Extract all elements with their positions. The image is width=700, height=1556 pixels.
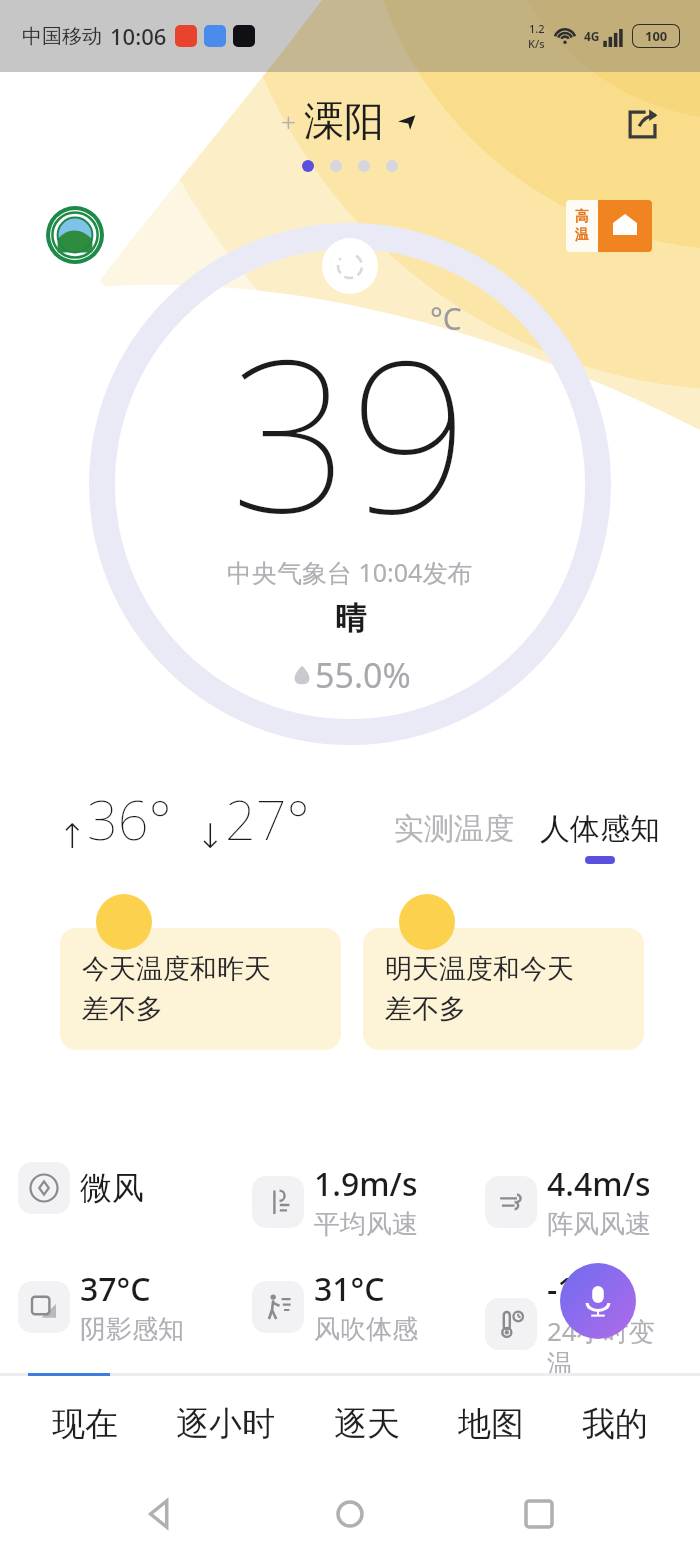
staticText: 实测温度	[394, 810, 514, 848]
button[interactable]: 现在	[46, 1393, 124, 1455]
staticText: 阴影感知	[80, 1313, 184, 1346]
staticText: 1.9m/s	[314, 1162, 418, 1206]
staticText: 今天温度和昨天 差不多	[82, 952, 271, 1026]
button[interactable]: 逐小时	[170, 1393, 281, 1455]
button[interactable]: 4.4m/s	[467, 1162, 700, 1241]
staticText: 明天温度和今天 差不多	[385, 952, 574, 1026]
staticText: 中央气象台 10:04发布	[227, 555, 473, 589]
button[interactable]: Back	[133, 1486, 189, 1542]
button[interactable]: Recents	[511, 1486, 567, 1542]
staticText: 36°	[87, 782, 172, 856]
button[interactable]: 37°C	[0, 1267, 234, 1346]
button[interactable]: 我的	[576, 1393, 654, 1455]
button[interactable]: 高温预警	[566, 200, 652, 252]
staticText: ↓	[196, 816, 225, 856]
button[interactable]: Home	[322, 1486, 378, 1542]
staticText: K/s	[528, 36, 545, 51]
staticText: 高	[575, 208, 589, 226]
staticText: 风吹体感	[314, 1313, 418, 1346]
button[interactable]: Origin zone badge	[46, 206, 104, 264]
button[interactable]: 今天温度和昨天 差不多	[60, 928, 341, 1050]
button[interactable]: -1°	[467, 1267, 700, 1381]
button[interactable]: Voice assistant	[560, 1263, 636, 1339]
staticText: 39	[230, 288, 470, 574]
staticText: 平均风速	[314, 1208, 418, 1241]
staticText: 地图	[458, 1403, 524, 1445]
button[interactable]: Share	[618, 100, 666, 148]
button[interactable]: 实测温度	[390, 810, 518, 848]
button[interactable]: +	[281, 96, 420, 146]
staticText: -1°	[547, 1267, 590, 1311]
staticText: 阵风风速	[547, 1208, 651, 1241]
staticText: 我的	[582, 1403, 648, 1445]
button[interactable]: 逐天	[328, 1393, 406, 1455]
staticText: °C	[430, 298, 462, 339]
button[interactable]: 1.9m/s	[234, 1162, 467, 1241]
button[interactable]: 明天温度和今天 差不多	[363, 928, 644, 1050]
staticText: 100	[645, 27, 668, 45]
button[interactable]: 地图	[452, 1393, 530, 1455]
staticText: 37°C	[80, 1267, 151, 1311]
button[interactable]: 微风	[0, 1162, 234, 1214]
staticText: 31°C	[314, 1267, 385, 1311]
staticText: 人体感知	[540, 810, 660, 848]
staticText: 微风	[80, 1168, 144, 1208]
staticText: 27°	[225, 782, 310, 856]
staticText: 溧阳	[304, 96, 384, 146]
staticText: 晴	[335, 599, 366, 638]
staticText: 55.0%	[315, 652, 411, 698]
staticText: 1.2	[529, 21, 545, 36]
staticText: 逐天	[334, 1403, 400, 1445]
other: Location	[394, 108, 420, 134]
staticText: 温	[575, 226, 589, 244]
staticText: +	[281, 104, 296, 139]
staticText: 逐小时	[176, 1403, 275, 1445]
staticText: 24小时变 温	[547, 1313, 655, 1381]
button[interactable]: 人体感知	[540, 810, 660, 864]
staticText: 4G	[584, 28, 600, 44]
staticText: 4.4m/s	[547, 1162, 651, 1206]
staticText: 中国移动	[22, 24, 102, 49]
button[interactable]: 31°C	[234, 1267, 467, 1346]
button[interactable]: Refresh	[322, 238, 378, 294]
staticText: ↑	[58, 816, 87, 856]
staticText: 10:06	[110, 21, 167, 51]
staticText: 现在	[52, 1403, 118, 1445]
